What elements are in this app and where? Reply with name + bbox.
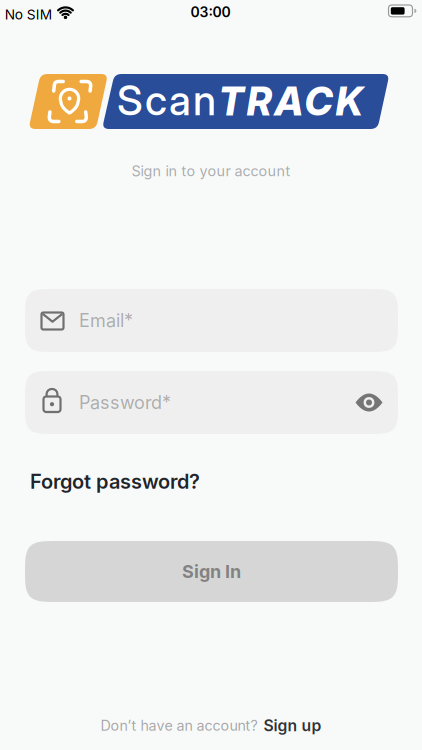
button[interactable]: Email* [25, 289, 398, 352]
staticText: Password* [79, 392, 171, 413]
button[interactable]: Forgot password? [30, 469, 200, 494]
button[interactable]: Password* [25, 371, 398, 434]
staticText: Scan [117, 75, 216, 125]
staticText: No SIM [5, 6, 52, 23]
button[interactable]: Show password [353, 390, 385, 414]
staticText: Sign In [182, 561, 241, 582]
staticText: Sign up [263, 716, 321, 735]
staticText: Forgot password? [30, 469, 200, 494]
staticText: Don’t have an account? [100, 717, 257, 734]
staticText: Sign in to your account [131, 162, 290, 180]
button[interactable]: Sign In [25, 541, 398, 602]
staticText: Email* [79, 310, 133, 331]
button[interactable]: Sign up [263, 716, 321, 735]
staticText: TRACK [218, 78, 363, 125]
staticText: 03:00 [190, 4, 230, 21]
